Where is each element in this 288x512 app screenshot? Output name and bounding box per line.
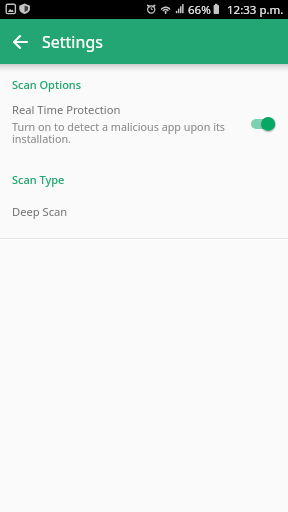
staticText: 66% (188, 2, 211, 18)
staticText: Settings (42, 31, 103, 53)
staticText: Deep Scan (12, 204, 68, 219)
staticText: Real Time Protection (12, 102, 121, 117)
staticText: Turn on to detect a malicious app upon i… (12, 119, 245, 146)
button[interactable]: Navigate up (0, 19, 39, 64)
button[interactable]: Deep Scan (0, 200, 288, 223)
staticText: 12:33 p.m. (227, 2, 284, 18)
button[interactable]: Real Time Protection (0, 100, 288, 148)
button[interactable]: Real Time Protection, on (251, 116, 277, 132)
staticText: Scan Options (12, 77, 82, 92)
staticText: Scan Type (12, 172, 65, 187)
